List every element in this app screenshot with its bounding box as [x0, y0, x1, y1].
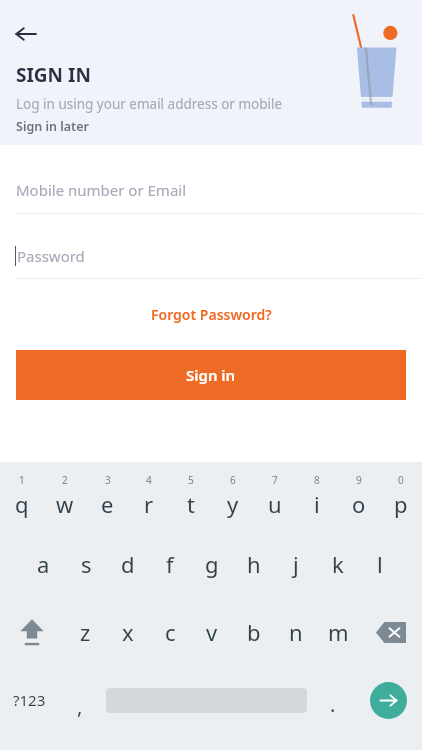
staticText: 7	[272, 473, 278, 487]
staticText: w	[56, 489, 74, 519]
staticText: 0	[398, 473, 404, 487]
staticText: l	[377, 549, 383, 579]
button[interactable]: b	[233, 598, 275, 666]
button[interactable]: 0	[380, 462, 422, 530]
button[interactable]: Space	[101, 666, 312, 734]
button[interactable]: Shift	[0, 598, 64, 666]
button[interactable]: g	[191, 530, 233, 598]
button[interactable]: 1	[0, 462, 43, 530]
button[interactable]: 7	[254, 462, 296, 530]
staticText: 2	[62, 473, 68, 487]
button[interactable]: Backspace	[359, 598, 422, 666]
button[interactable]: Mobile number or Email	[0, 167, 422, 213]
staticText: e	[101, 489, 114, 519]
button[interactable]: .	[312, 666, 354, 734]
button[interactable]: l	[359, 530, 401, 598]
staticText: 5	[188, 473, 194, 487]
staticText: Password	[17, 246, 85, 266]
staticText: Sign in	[186, 365, 236, 385]
staticText: f	[166, 549, 174, 579]
button[interactable]: Enter	[354, 666, 422, 734]
staticText: g	[205, 549, 219, 579]
staticText: r	[144, 489, 154, 519]
staticText: Forgot Password?	[151, 305, 272, 324]
button[interactable]: Back	[6, 14, 46, 54]
button[interactable]: m	[317, 598, 359, 666]
staticText: p	[394, 489, 408, 519]
button[interactable]: d	[107, 530, 149, 598]
button[interactable]: x	[107, 598, 149, 666]
staticText: Log in using your email address or mobil…	[16, 95, 283, 113]
staticText: q	[15, 489, 29, 519]
staticText: k	[332, 549, 344, 579]
staticText: SIGN IN	[16, 62, 91, 88]
button[interactable]: 5	[170, 462, 212, 530]
button[interactable]: Sign in	[16, 350, 406, 400]
staticText: n	[289, 617, 303, 647]
staticText: a	[37, 549, 50, 579]
button[interactable]: Password	[0, 234, 422, 278]
staticText: .	[330, 691, 336, 718]
staticText: d	[121, 549, 135, 579]
staticText: t	[187, 489, 195, 519]
button[interactable]: 9	[338, 462, 380, 530]
staticText: 1	[19, 473, 25, 487]
button[interactable]: c	[149, 598, 191, 666]
staticText: j	[293, 549, 299, 579]
button[interactable]: 3	[86, 462, 128, 530]
staticText: i	[314, 489, 320, 519]
staticText: 6	[230, 473, 236, 487]
staticText: v	[206, 617, 218, 647]
staticText: c	[165, 617, 176, 647]
staticText: u	[268, 489, 282, 519]
button[interactable]: n	[275, 598, 317, 666]
staticText: ,	[77, 693, 83, 720]
button[interactable]: f	[149, 530, 191, 598]
button[interactable]: h	[233, 530, 275, 598]
staticText: ?123	[13, 690, 46, 710]
button[interactable]: Forgot Password?	[143, 301, 280, 328]
staticText: z	[80, 617, 91, 647]
button[interactable]: j	[275, 530, 317, 598]
button[interactable]: 6	[212, 462, 254, 530]
staticText: Mobile number or Email	[16, 180, 187, 200]
button[interactable]: a	[22, 530, 65, 598]
button[interactable]: 2	[43, 462, 86, 530]
staticText: 4	[146, 473, 152, 487]
staticText: y	[227, 489, 239, 519]
staticText: x	[122, 617, 134, 647]
button[interactable]: k	[317, 530, 359, 598]
button[interactable]: 8	[296, 462, 338, 530]
button[interactable]: v	[191, 598, 233, 666]
button[interactable]: ?123	[0, 666, 59, 734]
button[interactable]: ,	[59, 666, 101, 734]
button[interactable]: 4	[128, 462, 170, 530]
staticText: b	[247, 617, 261, 647]
staticText: 9	[356, 473, 362, 487]
button[interactable]: z	[64, 598, 107, 666]
staticText: o	[352, 489, 366, 519]
staticText: 8	[314, 473, 320, 487]
staticText: Sign in later	[16, 118, 89, 135]
button[interactable]: s	[65, 530, 107, 598]
staticText: 3	[105, 473, 111, 487]
staticText: s	[81, 549, 92, 579]
button[interactable]: Sign in later	[16, 118, 89, 135]
staticText: m	[328, 617, 349, 647]
staticText: h	[247, 549, 261, 579]
